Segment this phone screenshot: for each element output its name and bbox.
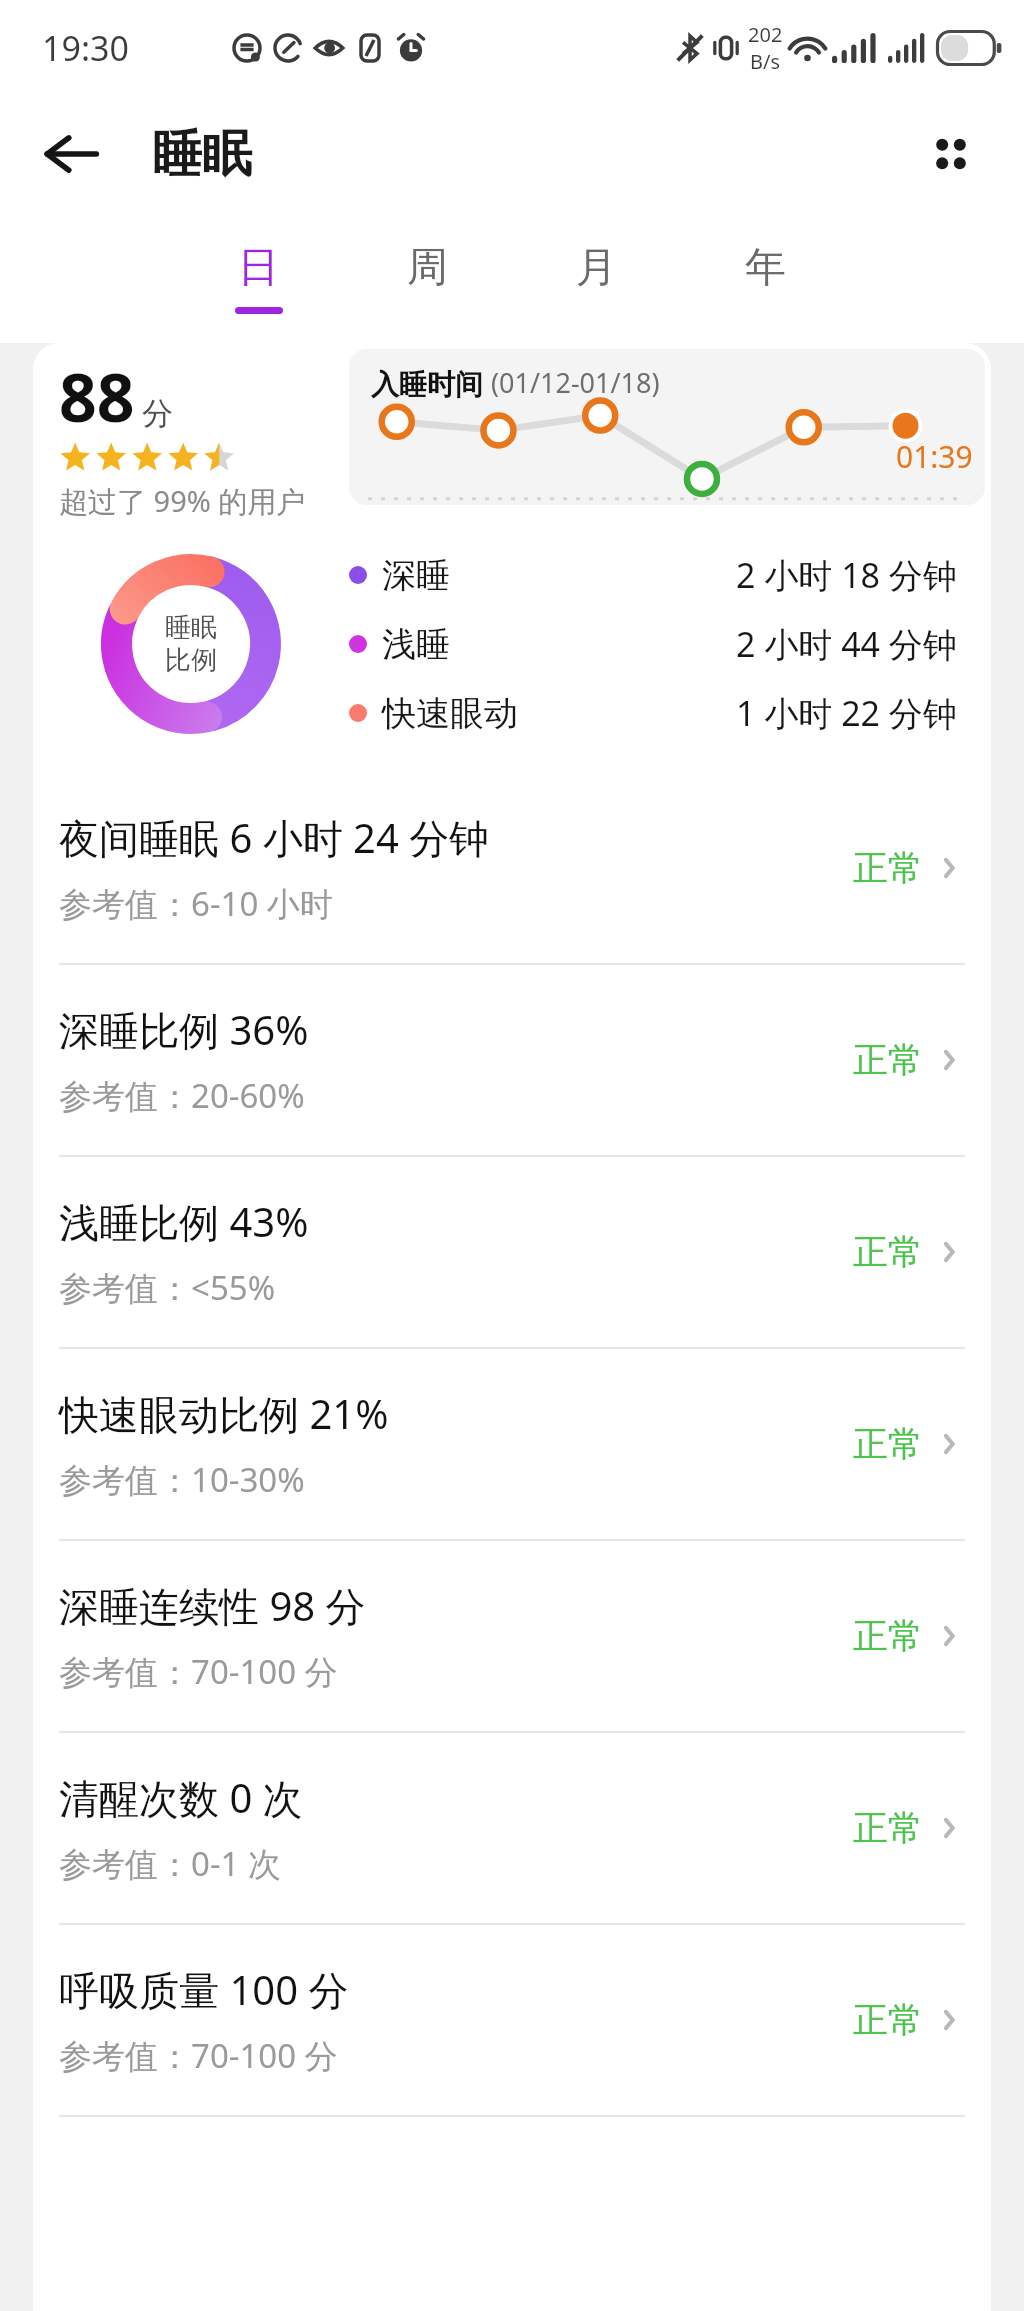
staticText: 202 [748,21,783,48]
staticText: 正常 [853,1230,923,1274]
button[interactable]: 年 [681,213,850,343]
button[interactable]: 清醒次数 0 次 [33,1733,991,1923]
staticText: 正常 [853,1806,923,1850]
staticText: 清醒次数 0 次 [59,1770,303,1825]
staticText: 2 小时 44 分钟 [736,621,957,667]
button[interactable]: 浅睡比例 43% [33,1157,991,1347]
staticText: 日 [238,242,279,294]
button[interactable]: Back [40,123,102,185]
staticText: 深睡连续性 98 分 [59,1578,366,1633]
staticText: 睡眠 [152,123,252,186]
button[interactable]: More options [918,121,984,187]
staticText: 分 [142,394,173,433]
staticText: 比例 [165,644,217,677]
staticText: 快速眼动 [382,692,518,735]
staticText: 2 小时 18 分钟 [736,552,957,598]
button[interactable]: 深睡比例 36% [33,965,991,1155]
staticText: 正常 [853,1614,923,1658]
staticText: 1 小时 22 分钟 [736,690,957,736]
staticText: 19:30 [42,25,129,71]
staticText: 参考值：70-100 分 [59,2033,338,2078]
button[interactable]: 呼吸质量 100 分 [33,1925,991,2115]
staticText: 夜间睡眠 6 小时 24 分钟 [59,810,490,865]
staticText: 睡眠 [165,611,217,644]
staticText: 月 [576,242,617,294]
staticText: 呼吸质量 100 分 [59,1962,349,2017]
staticText: 正常 [853,846,923,890]
staticText: 浅睡 [382,623,450,666]
staticText: 参考值：10-30% [59,1457,305,1502]
staticText: 参考值：<55% [59,1265,276,1310]
staticText: 88 [59,351,135,441]
button[interactable]: 深睡连续性 98 分 [33,1541,991,1731]
staticText: B/s [750,48,781,75]
staticText: 入睡时间 [371,367,483,402]
button[interactable]: 日 [174,213,343,343]
button[interactable]: 入睡时间 [349,349,985,505]
staticText: 正常 [853,1998,923,2042]
staticText: (01/12-01/18) [491,364,660,401]
staticText: 深睡 [382,554,450,597]
button[interactable]: 月 [512,213,681,343]
staticText: 参考值：70-100 分 [59,1649,338,1694]
staticText: 正常 [853,1038,923,1082]
staticText: 01:39 [896,436,973,477]
staticText: 正常 [853,1422,923,1466]
button[interactable]: 周 [343,213,512,343]
staticText: 快速眼动比例 21% [59,1386,389,1441]
staticText: 超过了 99% 的用户 [59,481,306,521]
staticText: 深睡比例 36% [59,1002,309,1057]
button[interactable]: 夜间睡眠 6 小时 24 分钟 [33,773,991,963]
staticText: 参考值：0-1 次 [59,1841,281,1886]
button[interactable]: 快速眼动比例 21% [33,1349,991,1539]
staticText: 年 [745,242,786,294]
staticText: 周 [407,242,448,294]
staticText: 浅睡比例 43% [59,1194,309,1249]
staticText: 参考值：20-60% [59,1073,305,1118]
staticText: 参考值：6-10 小时 [59,881,333,926]
